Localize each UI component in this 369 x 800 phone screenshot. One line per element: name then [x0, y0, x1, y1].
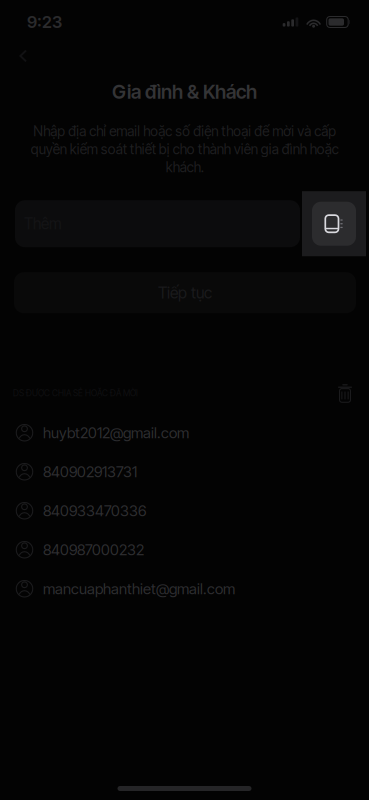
button[interactable]: mancuaphanthiet@gmail.com: [0, 569, 369, 608]
staticText: huybt2012@gmail.com: [43, 424, 189, 442]
staticText: 840987000232: [43, 541, 144, 559]
staticText: Gia đình & Khách: [112, 80, 257, 103]
staticText: Nhập địa chỉ email hoặc số điện thoại để…: [30, 122, 338, 176]
staticText: DS ĐƯỢC CHIA SẺ HOẶC ĐÃ MỜI: [13, 388, 138, 398]
button[interactable]: Xoá tất cả: [330, 379, 369, 407]
staticText: 840933470336: [43, 502, 146, 520]
staticText: 840902913731: [43, 463, 137, 481]
button[interactable]: 840987000232: [0, 530, 369, 569]
staticText: mancuaphanthiet@gmail.com: [43, 580, 235, 598]
button[interactable]: 840933470336: [0, 491, 369, 530]
staticText: 9:23: [27, 12, 62, 32]
staticText: Tiếp tục: [158, 283, 212, 302]
button[interactable]: 840902913731: [0, 452, 369, 491]
button[interactable]: huybt2012@gmail.com: [0, 413, 369, 452]
button[interactable]: Chọn từ danh bạ: [302, 191, 366, 256]
